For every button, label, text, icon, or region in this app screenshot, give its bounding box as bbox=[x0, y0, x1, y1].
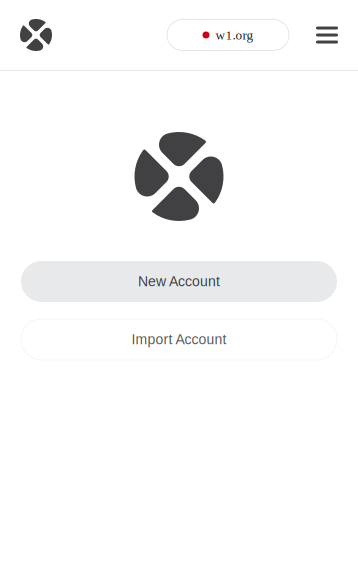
staticText: w1.org bbox=[215, 28, 253, 42]
button[interactable]: New Account bbox=[21, 261, 337, 302]
staticText: New Account bbox=[138, 274, 220, 289]
button[interactable]: Home bbox=[20, 19, 52, 51]
button[interactable]: Menu bbox=[316, 26, 338, 43]
button[interactable]: w1.org bbox=[167, 19, 289, 50]
button[interactable]: Import Account bbox=[21, 319, 337, 360]
staticText: Import Account bbox=[131, 332, 226, 347]
